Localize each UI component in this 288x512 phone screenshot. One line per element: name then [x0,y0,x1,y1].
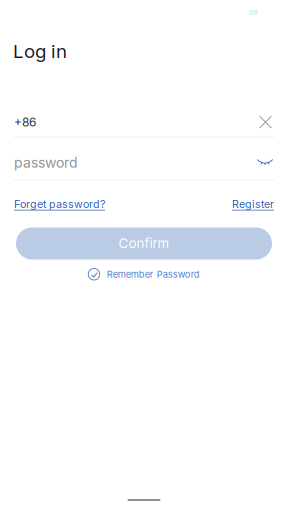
button[interactable]: Forget password? [14,198,105,210]
staticText: Register [232,198,274,210]
staticText: Forget password? [14,198,105,210]
button[interactable]: Register [232,198,274,210]
staticText: Confirm [118,235,169,251]
staticText: password [14,154,78,171]
staticText: Remember Password [107,269,200,280]
staticText: Log in [13,40,67,63]
button[interactable]: Show password [255,159,275,166]
button[interactable]: Remember Password [88,268,200,280]
button[interactable]: Confirm [16,227,272,259]
staticText: +86 [14,115,36,129]
button[interactable]: Clear phone number [257,116,274,129]
